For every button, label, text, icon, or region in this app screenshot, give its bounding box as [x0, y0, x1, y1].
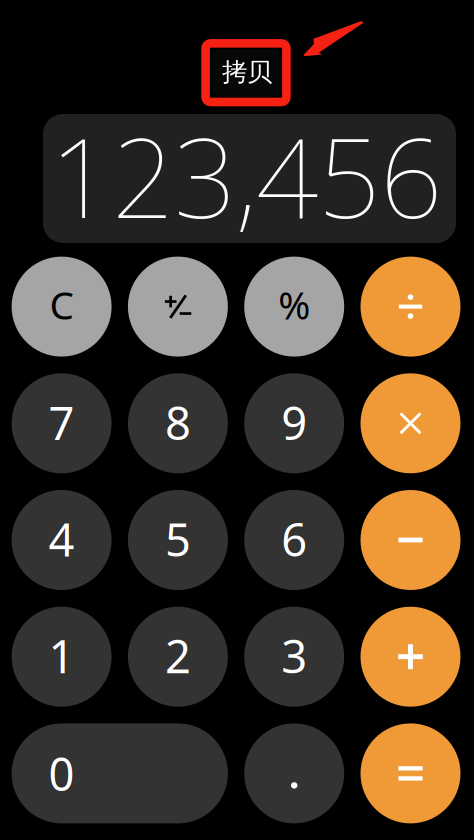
- staticText: 5: [165, 509, 191, 569]
- button[interactable]: Plus minus: [128, 257, 228, 357]
- button[interactable]: C: [12, 257, 112, 357]
- staticText: 3: [281, 626, 307, 686]
- staticText: 4: [49, 509, 75, 569]
- staticText: 拷贝: [222, 56, 272, 87]
- staticText: 9: [281, 392, 307, 452]
- staticText: 123,456: [50, 103, 442, 248]
- button[interactable]: 2: [128, 607, 228, 707]
- button[interactable]: Multiply: [360, 373, 460, 473]
- button[interactable]: 6: [244, 490, 344, 590]
- staticText: 7: [49, 392, 75, 452]
- button[interactable]: %: [244, 257, 344, 357]
- staticText: 1: [49, 626, 75, 686]
- button[interactable]: 5: [128, 490, 228, 590]
- staticText: 6: [281, 509, 307, 569]
- staticText: 0: [49, 743, 75, 803]
- button[interactable]: 9: [244, 373, 344, 473]
- button[interactable]: 1: [12, 607, 112, 707]
- staticText: %: [278, 279, 310, 330]
- button[interactable]: Add: [360, 607, 460, 707]
- button[interactable]: 4: [12, 490, 112, 590]
- staticText: 8: [165, 392, 191, 452]
- button[interactable]: 0: [12, 723, 228, 823]
- button[interactable]: 3: [244, 607, 344, 707]
- button[interactable]: Decimal point: [244, 723, 344, 823]
- staticText: 2: [165, 626, 191, 686]
- button[interactable]: 8: [128, 373, 228, 473]
- button[interactable]: Equals: [360, 723, 460, 823]
- button[interactable]: Subtract: [360, 490, 460, 590]
- button[interactable]: Divide: [360, 257, 460, 357]
- button[interactable]: 拷贝: [211, 49, 282, 97]
- button[interactable]: 7: [12, 373, 112, 473]
- staticText: C: [50, 279, 74, 330]
